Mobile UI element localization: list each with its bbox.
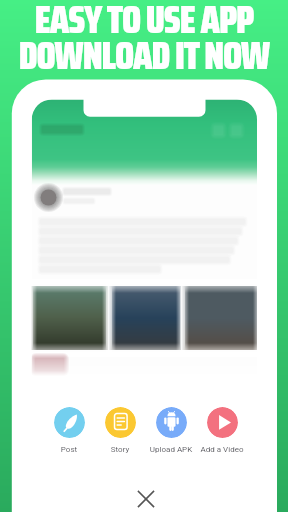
staticText: Story bbox=[91, 445, 149, 454]
button[interactable]: Upload APK bbox=[142, 407, 200, 454]
staticText: Upload APK bbox=[142, 445, 200, 454]
button[interactable]: Add a Video bbox=[193, 407, 251, 454]
button[interactable]: Post bbox=[40, 407, 98, 454]
staticText: EASY TO USE APP DOWNLOAD IT NOW bbox=[0, 0, 288, 86]
button[interactable]: Close bbox=[130, 483, 162, 512]
staticText: Add a Video bbox=[193, 445, 251, 454]
button[interactable]: Story bbox=[91, 407, 149, 454]
staticText: Post bbox=[40, 445, 98, 454]
